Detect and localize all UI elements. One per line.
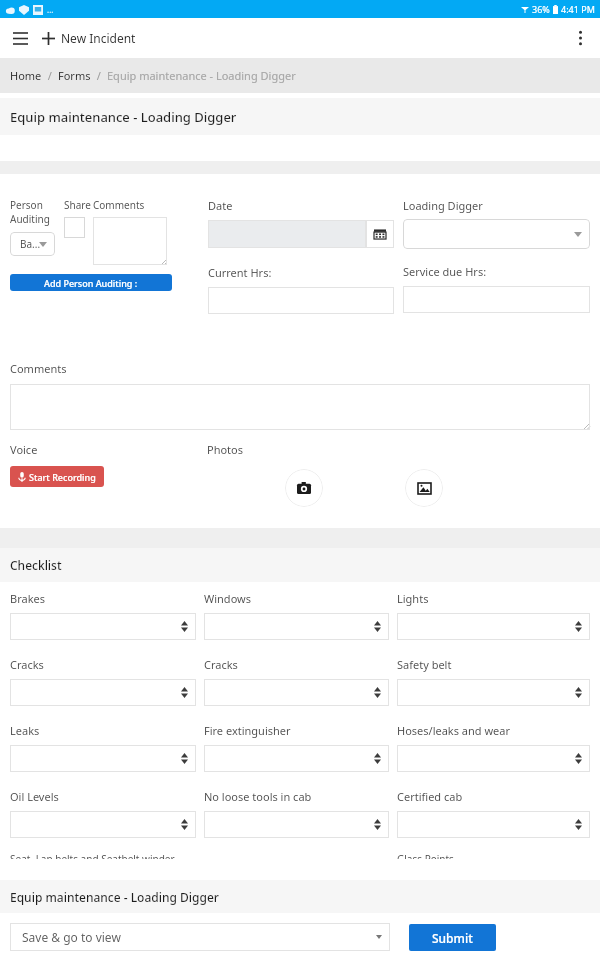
button[interactable]: Select option xyxy=(397,811,590,838)
staticText: Fire extinguisher xyxy=(204,723,291,738)
staticText: Service due Hrs: xyxy=(403,264,487,279)
staticText: Comments xyxy=(93,198,145,212)
staticText: Brakes xyxy=(10,591,45,606)
staticText: Seat, Lap belts and Seatbelt winder xyxy=(10,852,175,859)
button[interactable]: Home xyxy=(10,68,42,83)
staticText: Equip maintenance - Loading Digger xyxy=(10,889,219,905)
button[interactable]: Select option xyxy=(10,679,196,706)
button[interactable]: Choose image xyxy=(405,469,443,507)
staticText: Safety belt xyxy=(397,657,452,672)
button[interactable]: More options xyxy=(560,18,600,58)
staticText: / xyxy=(42,68,58,83)
staticText: Cracks xyxy=(204,657,238,672)
staticText: Checklist xyxy=(10,557,62,573)
staticText: Start Recording xyxy=(29,471,96,483)
button[interactable]: Select option xyxy=(397,613,590,640)
staticText: Lights xyxy=(397,591,429,606)
button[interactable]: Select option xyxy=(204,679,389,706)
staticText: Leaks xyxy=(10,723,40,738)
button[interactable]: Dropdown xyxy=(403,219,590,249)
staticText: No loose tools in cab xyxy=(204,789,312,804)
staticText: Oil Levels xyxy=(10,789,59,804)
staticText: Share xyxy=(64,198,91,212)
button[interactable]: Add Person Auditing : xyxy=(10,274,172,291)
staticText: Person xyxy=(10,198,43,212)
staticText: Windows xyxy=(204,591,251,606)
button[interactable]: Select option xyxy=(204,745,389,772)
staticText: New Incident xyxy=(61,30,136,46)
staticText: Submit xyxy=(432,930,473,946)
button[interactable]: Submit xyxy=(409,924,496,951)
button[interactable]: Start Recording xyxy=(18,466,96,487)
staticText: Equip maintenance - Loading Digger xyxy=(107,68,296,83)
staticText: Add Person Auditing : xyxy=(44,277,138,289)
button[interactable] xyxy=(403,286,590,313)
staticText: Current Hrs: xyxy=(208,265,272,280)
button[interactable]: Share checkbox xyxy=(64,217,85,238)
staticText: Auditing : xyxy=(10,212,55,226)
button[interactable]: Save & go to view xyxy=(10,923,390,951)
staticText: Certified cab xyxy=(397,789,463,804)
staticText: ... xyxy=(47,4,54,15)
staticText: 4:41 PM xyxy=(561,3,595,15)
staticText: 36% xyxy=(532,3,550,15)
staticText: Glass Points xyxy=(397,852,454,859)
staticText: Comments xyxy=(10,361,67,376)
staticText: / xyxy=(91,68,107,83)
button[interactable] xyxy=(10,384,590,430)
staticText: Loading Digger xyxy=(403,198,483,213)
staticText: Date xyxy=(208,198,233,213)
button[interactable]: Select option xyxy=(10,613,196,640)
button[interactable]: Select option xyxy=(10,745,196,772)
staticText: Voice xyxy=(10,442,38,457)
button[interactable]: Take photo xyxy=(285,469,323,507)
staticText: Cracks xyxy=(10,657,44,672)
staticText: Equip maintenance - Loading Digger xyxy=(10,108,237,126)
button[interactable]: Select option xyxy=(204,613,389,640)
button[interactable]: Pick date xyxy=(208,220,394,248)
button[interactable] xyxy=(93,217,167,265)
button[interactable]: Select option xyxy=(397,745,590,772)
button[interactable]: Select option xyxy=(397,679,590,706)
button[interactable]: Ba... xyxy=(10,232,55,256)
button[interactable]: New Incident xyxy=(40,24,138,52)
button[interactable]: Menu xyxy=(0,18,40,58)
staticText: Ba... xyxy=(20,237,41,251)
button[interactable]: Forms xyxy=(58,68,91,83)
staticText: Hoses/leaks and wear xyxy=(397,723,511,738)
staticText: Save & go to view xyxy=(22,929,121,945)
staticText: Photos xyxy=(207,442,244,457)
button[interactable]: Select option xyxy=(10,811,196,838)
button[interactable] xyxy=(208,287,394,314)
button[interactable]: Select option xyxy=(204,811,389,838)
